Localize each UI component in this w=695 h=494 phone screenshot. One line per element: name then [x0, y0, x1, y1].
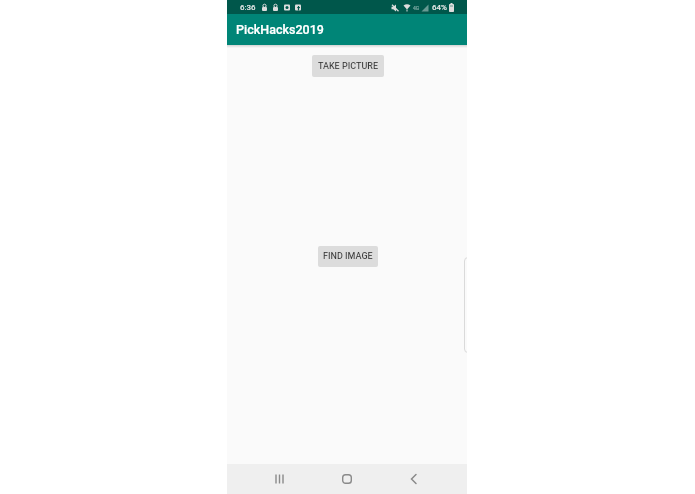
button[interactable] [402, 467, 426, 491]
button[interactable] [335, 467, 359, 491]
staticText: 4G [413, 5, 420, 11]
staticText: FIND IMAGE [323, 251, 373, 262]
button[interactable]: FIND IMAGE [318, 246, 378, 267]
staticText: 6:36 [240, 3, 256, 12]
staticText: TAKE PICTURE [318, 61, 379, 72]
button[interactable] [268, 467, 292, 491]
button[interactable]: TAKE PICTURE [312, 55, 384, 77]
staticText: PickHacks2019 [236, 22, 324, 37]
staticText: 64% [432, 3, 447, 12]
